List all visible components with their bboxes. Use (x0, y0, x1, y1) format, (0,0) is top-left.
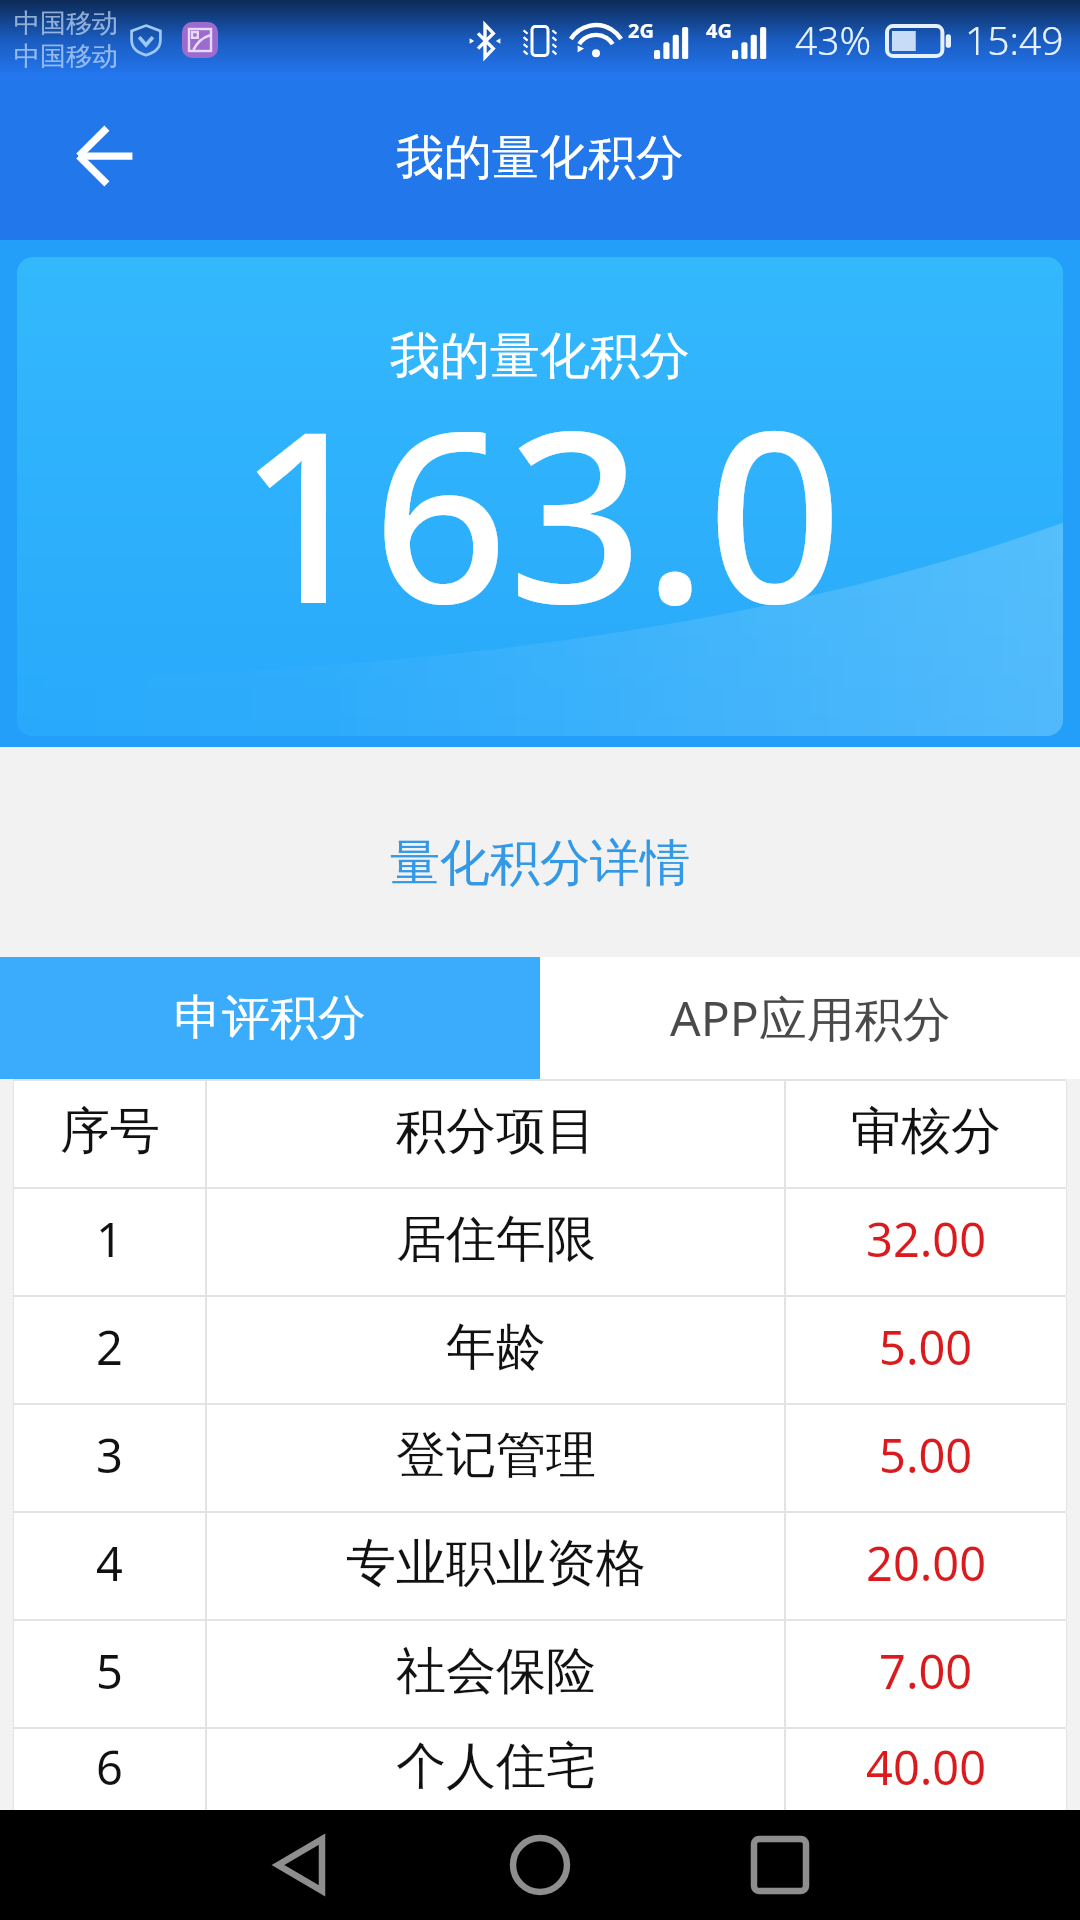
staticText: 3 (96, 1423, 123, 1487)
staticText: 4 (96, 1531, 123, 1595)
staticText: 43% (795, 13, 872, 66)
staticText: 5 (96, 1639, 123, 1703)
staticText: 我的量化积分 (396, 128, 684, 188)
staticText: 我的量化积分 (390, 325, 690, 388)
button[interactable]: Home (480, 1810, 600, 1920)
button[interactable]: 4 (0, 1513, 1080, 1619)
staticText: 中国移动 (14, 7, 118, 40)
button[interactable]: 申评积分 (0, 957, 540, 1079)
staticText: 居住年限 (396, 1208, 596, 1271)
button[interactable]: Back (66, 122, 142, 198)
staticText: 量化积分详情 (390, 832, 690, 895)
button[interactable]: 5 (0, 1621, 1080, 1727)
staticText: 积分项目 (396, 1100, 596, 1163)
staticText: 5.00 (879, 1315, 973, 1379)
button[interactable]: Back (240, 1810, 360, 1920)
staticText: 32.00 (866, 1207, 987, 1271)
staticText: 年龄 (446, 1316, 546, 1379)
staticText: 序号 (60, 1100, 160, 1163)
staticText: 2 (96, 1315, 123, 1379)
button[interactable]: Recent apps (720, 1810, 840, 1920)
staticText: 登记管理 (396, 1424, 596, 1487)
staticText: 163.0 (238, 351, 843, 672)
button[interactable]: APP应用积分 (540, 957, 1080, 1079)
button[interactable]: 2 (0, 1297, 1080, 1403)
staticText: 审核分 (851, 1100, 1001, 1163)
staticText: 专业职业资格 (346, 1532, 646, 1595)
button[interactable]: 序号 (0, 1081, 1080, 1187)
staticText: 20.00 (866, 1531, 987, 1595)
staticText: 社会保险 (396, 1640, 596, 1703)
staticText: 7.00 (879, 1639, 973, 1703)
staticText: 2G (628, 17, 654, 44)
staticText: 6 (96, 1735, 123, 1799)
button[interactable]: 3 (0, 1405, 1080, 1511)
staticText: 中国移动 (14, 40, 118, 73)
staticText: 5.00 (879, 1423, 973, 1487)
staticText: 15:49 (965, 13, 1064, 66)
staticText: 申评积分 (174, 988, 366, 1048)
staticText: 40.00 (866, 1735, 987, 1799)
staticText: 4G (706, 17, 732, 44)
staticText: 1 (96, 1207, 123, 1271)
button[interactable]: 1 (0, 1189, 1080, 1295)
staticText: 个人住宅 (396, 1735, 596, 1798)
staticText: APP应用积分 (670, 985, 951, 1051)
button[interactable]: 6 (0, 1729, 1080, 1810)
